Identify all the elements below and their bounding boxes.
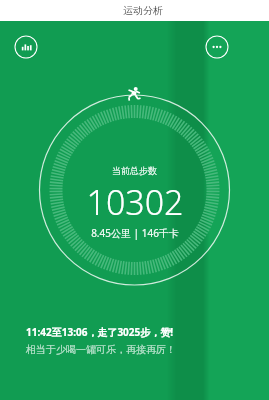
- staticText: 运动分析: [123, 4, 163, 17]
- staticText: 10302: [86, 179, 184, 225]
- staticText: 相当于少喝一罐可乐，再接再厉！: [26, 343, 176, 356]
- button[interactable]: 更多: [205, 35, 229, 59]
- staticText: 8.45公里 | 146千卡: [91, 226, 179, 240]
- staticText: 当前总步数: [112, 165, 157, 176]
- staticText: 11:42至13:06，走了3025步，赞!: [26, 325, 174, 339]
- button[interactable]: 统计: [14, 35, 38, 59]
